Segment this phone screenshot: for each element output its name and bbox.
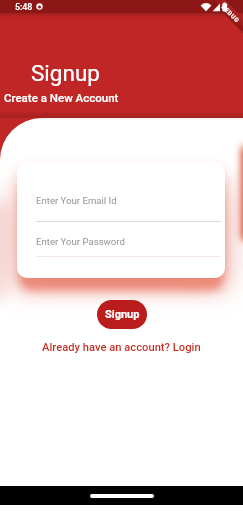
staticText: 5:48 [15,2,33,12]
button[interactable]: Already have an account? Login [0,339,243,355]
staticText: Signup [31,60,100,86]
button[interactable]: Enter Your Password [17,225,225,259]
staticText: Already have an account? Login [42,341,201,354]
staticText: DEBUG [220,3,242,24]
staticText: Enter Your Password [36,236,125,247]
button[interactable] [90,494,154,498]
staticText: Enter Your Email Id [36,195,117,206]
button[interactable]: Enter Your Email Id [17,187,225,221]
staticText: Create a New Account [4,91,119,104]
staticText: Signup [105,308,140,321]
button[interactable]: Signup [97,300,147,329]
